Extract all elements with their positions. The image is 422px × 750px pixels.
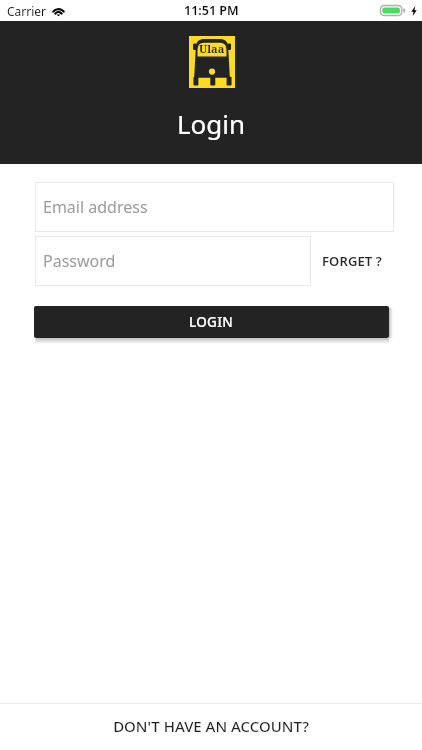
staticText: Login: [177, 106, 246, 141]
button[interactable]: FORGET ?: [322, 236, 382, 286]
other: Wi-Fi signal: [51, 6, 66, 16]
staticText: Email address: [43, 196, 148, 218]
staticText: FORGET ?: [322, 252, 382, 270]
button[interactable]: Password: [35, 236, 311, 286]
other: Battery full, charging: [380, 5, 406, 16]
staticText: LOGIN: [189, 313, 234, 331]
button[interactable]: DON'T HAVE AN ACCOUNT?: [0, 706, 422, 746]
button[interactable]: Email address: [35, 182, 394, 232]
staticText: 11:51 PM: [184, 2, 239, 19]
button[interactable]: LOGIN: [34, 306, 389, 338]
staticText: Password: [43, 250, 116, 272]
staticText: DON'T HAVE AN ACCOUNT?: [113, 716, 309, 736]
staticText: Ulaa: [199, 41, 225, 56]
staticText: Carrier: [7, 3, 47, 19]
